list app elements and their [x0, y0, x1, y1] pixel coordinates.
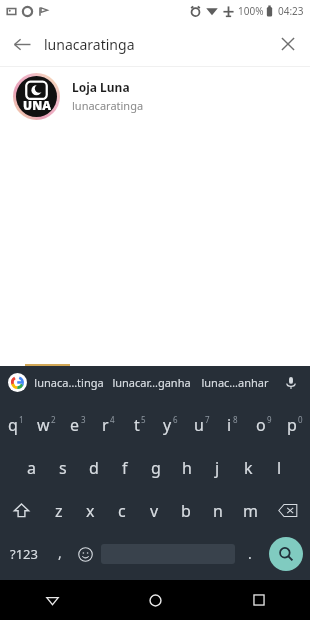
staticText: t: [134, 414, 140, 436]
button[interactable]: t: [124, 403, 155, 446]
staticText: b: [181, 500, 191, 522]
button[interactable]: Backspace: [266, 489, 310, 532]
staticText: 100%: [238, 4, 264, 18]
staticText: 1: [19, 414, 24, 425]
button[interactable]: Shift: [0, 489, 43, 532]
button[interactable]: Emoji: [72, 532, 98, 576]
staticText: e: [70, 414, 80, 436]
button[interactable]: k: [233, 446, 264, 489]
staticText: f: [122, 457, 128, 479]
staticText: .: [248, 544, 252, 563]
staticText: 04:23: [278, 4, 304, 18]
button[interactable]: i: [217, 403, 248, 446]
staticText: q: [8, 414, 18, 436]
staticText: y: [163, 414, 172, 436]
button[interactable]: Period: [238, 532, 262, 576]
staticText: x: [86, 500, 95, 522]
button[interactable]: Back: [0, 580, 104, 620]
button[interactable]: lunac…anhar: [193, 366, 276, 399]
staticText: s: [59, 457, 67, 479]
staticText: Loja Luna: [72, 79, 130, 95]
staticText: d: [89, 457, 99, 479]
staticText: 5: [141, 414, 146, 425]
button[interactable]: Google: [8, 373, 27, 392]
button[interactable]: x: [74, 489, 106, 532]
button[interactable]: u: [186, 403, 217, 446]
button[interactable]: lunaca…tinga: [27, 366, 110, 399]
staticText: z: [55, 500, 63, 522]
button[interactable]: p: [279, 403, 310, 446]
button[interactable]: s: [47, 446, 78, 489]
button[interactable]: m: [234, 489, 266, 532]
staticText: l: [277, 457, 282, 479]
staticText: ?123: [10, 545, 38, 563]
staticText: 8: [233, 414, 238, 425]
staticText: 2: [51, 414, 56, 425]
staticText: 9: [267, 414, 272, 425]
staticText: v: [150, 500, 159, 522]
button[interactable]: z: [43, 489, 74, 532]
button[interactable]: f: [109, 446, 140, 489]
staticText: 0: [298, 414, 303, 425]
button[interactable]: j: [202, 446, 233, 489]
button[interactable]: h: [171, 446, 202, 489]
button[interactable]: w: [31, 403, 62, 446]
staticText: n: [213, 500, 223, 522]
staticText: lunacaratinga: [72, 98, 144, 113]
button[interactable]: a: [15, 446, 47, 489]
button[interactable]: b: [170, 489, 202, 532]
staticText: w: [37, 414, 50, 436]
button[interactable]: lunacaratinga: [44, 22, 266, 66]
staticText: j: [215, 457, 220, 479]
button[interactable]: Comma: [48, 532, 72, 576]
button[interactable]: d: [78, 446, 109, 489]
staticText: 6: [173, 414, 178, 425]
button[interactable]: c: [106, 489, 138, 532]
button[interactable]: v: [138, 489, 170, 532]
staticText: 7: [205, 414, 210, 425]
button[interactable]: o: [248, 403, 279, 446]
staticText: ,: [58, 543, 62, 562]
staticText: lunac…anhar: [201, 375, 269, 390]
button[interactable]: UNA: [0, 67, 310, 125]
button[interactable]: r: [93, 403, 124, 446]
staticText: lunacaratinga: [44, 35, 135, 54]
staticText: p: [287, 414, 297, 436]
staticText: 3: [81, 414, 86, 425]
button[interactable]: g: [140, 446, 171, 489]
staticText: g: [151, 457, 161, 479]
staticText: u: [194, 414, 204, 436]
staticText: m: [243, 500, 258, 522]
staticText: a: [27, 457, 36, 479]
button[interactable]: Clear: [266, 22, 310, 66]
button[interactable]: l: [264, 446, 295, 489]
staticText: c: [118, 500, 126, 522]
staticText: o: [256, 414, 266, 436]
button[interactable]: lunacar…ganha: [110, 366, 193, 399]
staticText: lunacar…ganha: [112, 375, 191, 390]
button[interactable]: e: [62, 403, 93, 446]
button[interactable]: q: [0, 403, 31, 446]
button[interactable]: Voice input: [276, 366, 306, 399]
staticText: i: [227, 414, 232, 436]
staticText: r: [102, 414, 109, 436]
button[interactable]: Home: [104, 580, 207, 620]
button[interactable]: n: [202, 489, 234, 532]
button[interactable]: Back: [0, 22, 44, 66]
staticText: lunaca…tinga: [34, 375, 104, 390]
staticText: k: [244, 457, 253, 479]
staticText: 4: [110, 414, 115, 425]
staticText: h: [182, 457, 192, 479]
button[interactable]: Search: [269, 537, 303, 571]
staticText: UNA: [23, 97, 51, 113]
button[interactable]: ?123: [0, 532, 48, 576]
button[interactable]: Recents: [207, 580, 310, 620]
button[interactable]: y: [155, 403, 186, 446]
